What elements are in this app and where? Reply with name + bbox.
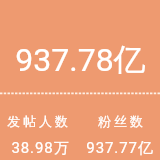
staticText: 937.77亿 bbox=[86, 139, 154, 158]
staticText: 38.98万 bbox=[11, 139, 70, 158]
button[interactable]: 粉丝数 bbox=[80, 111, 160, 160]
button[interactable]: 发帖人数 bbox=[0, 111, 80, 160]
staticText: 发帖人数 bbox=[7, 113, 71, 129]
staticText: 粉丝数 bbox=[98, 113, 146, 129]
staticText: 937.78亿 bbox=[15, 40, 146, 74]
